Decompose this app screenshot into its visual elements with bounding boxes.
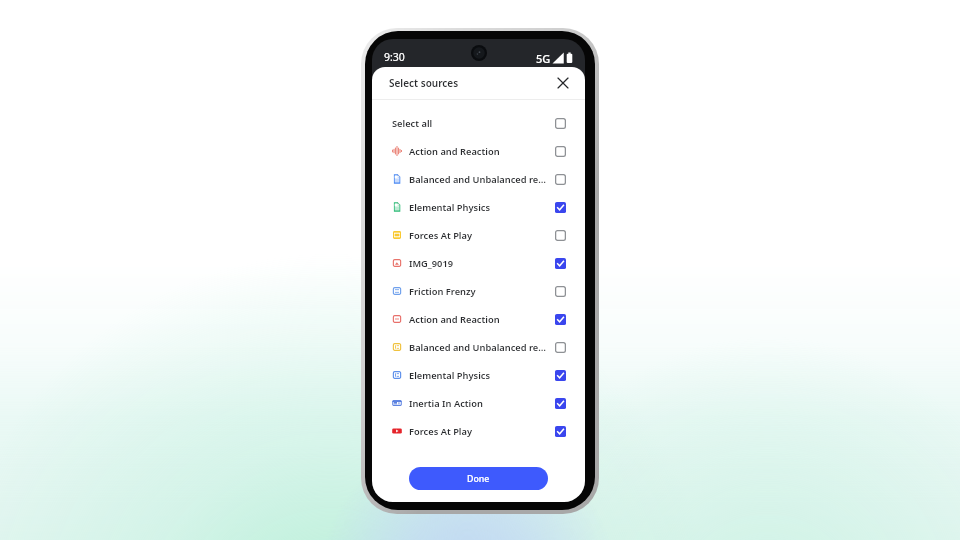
staticText: Action and Reaction xyxy=(409,145,550,158)
staticText: Done xyxy=(467,473,490,485)
button[interactable]: Not selected xyxy=(550,337,570,357)
button[interactable]: Action and Reaction xyxy=(372,305,585,333)
button[interactable]: Not selected xyxy=(550,113,570,133)
staticText: Elemental Physics xyxy=(409,369,550,382)
button[interactable]: Selected xyxy=(550,421,570,441)
button[interactable]: Inertia In Action xyxy=(372,389,585,417)
button[interactable]: Selected xyxy=(550,365,570,385)
staticText: Select sources xyxy=(389,76,459,90)
staticText: Forces At Play xyxy=(409,229,550,242)
button[interactable]: Elemental Physics xyxy=(372,361,585,389)
button[interactable]: IMG_9019 xyxy=(372,249,585,277)
staticText: Forces At Play xyxy=(409,425,550,438)
button[interactable]: Elemental Physics xyxy=(372,193,585,221)
staticText: Friction Frenzy xyxy=(409,285,550,298)
button[interactable]: Selected xyxy=(550,197,570,217)
button[interactable]: Forces At Play xyxy=(372,417,585,445)
button[interactable]: Close xyxy=(555,75,571,91)
button[interactable]: Done xyxy=(409,467,548,490)
button[interactable]: Selected xyxy=(550,253,570,273)
button[interactable]: Not selected xyxy=(550,225,570,245)
staticText: Balanced and Unbalanced re… xyxy=(409,173,550,186)
button[interactable]: Friction Frenzy xyxy=(372,277,585,305)
button[interactable]: Forces At Play xyxy=(372,221,585,249)
staticText: Inertia In Action xyxy=(409,397,550,410)
staticText: IMG_9019 xyxy=(409,257,550,270)
button[interactable]: Not selected xyxy=(550,281,570,301)
button[interactable]: Select all xyxy=(372,109,585,137)
button[interactable]: Selected xyxy=(550,393,570,413)
staticText: 5G xyxy=(536,51,551,66)
button[interactable]: Not selected xyxy=(550,141,570,161)
staticText: 9:30 xyxy=(384,50,405,64)
staticText: Elemental Physics xyxy=(409,201,550,214)
staticText: Balanced and Unbalanced re… xyxy=(409,341,550,354)
button[interactable]: Selected xyxy=(550,309,570,329)
button[interactable]: Not selected xyxy=(550,169,570,189)
button[interactable]: Balanced and Unbalanced re… xyxy=(372,165,585,193)
button[interactable]: Balanced and Unbalanced re… xyxy=(372,333,585,361)
button[interactable]: Action and Reaction xyxy=(372,137,585,165)
staticText: Action and Reaction xyxy=(409,313,550,326)
staticText: Select all xyxy=(392,117,550,130)
